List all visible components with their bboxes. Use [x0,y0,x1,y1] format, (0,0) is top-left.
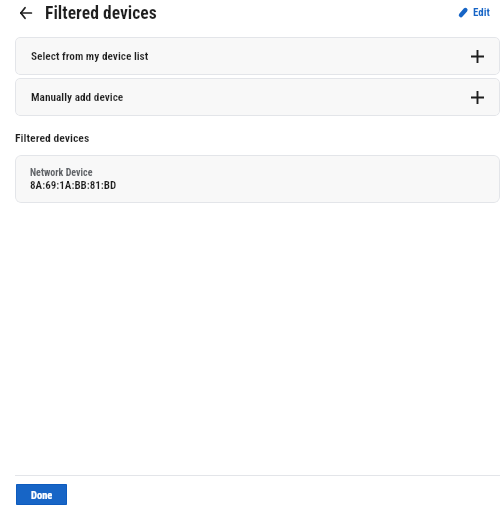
button[interactable]: Select from my device list [15,37,500,75]
staticText: Done [31,489,53,501]
staticText: Select from my device list [31,50,149,63]
staticText: 8A:69:1A:BB:81:BD [30,179,117,192]
staticText: Edit [473,6,490,19]
button[interactable]: Manually add device [15,78,500,116]
button[interactable]: Done [16,484,67,505]
button[interactable]: Edit [457,5,492,20]
staticText: Filtered devices [15,131,90,145]
staticText: Filtered devices [45,3,157,24]
staticText: Manually add device [31,91,124,104]
staticText: Network Device [30,167,93,179]
button[interactable]: Network Device [15,155,500,203]
button[interactable]: Back [12,0,39,26]
